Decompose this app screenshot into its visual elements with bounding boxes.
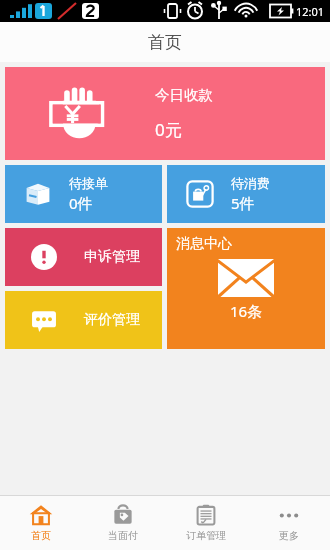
staticText: 待接单	[69, 175, 108, 191]
staticText: 当面付	[108, 529, 138, 542]
staticText: 12:01	[296, 4, 325, 19]
staticText: 申诉管理	[84, 248, 140, 266]
staticText: 0件	[69, 193, 93, 213]
staticText: 5件	[231, 193, 255, 213]
button[interactable]: 申诉管理	[5, 228, 162, 286]
button[interactable]: 评价管理	[5, 291, 162, 349]
button[interactable]: 待接单	[5, 165, 162, 223]
staticText: 订单管理	[186, 529, 226, 542]
staticText: 首页	[31, 529, 51, 542]
button[interactable]: 今日收款	[5, 67, 325, 160]
staticText: 消息中心	[176, 235, 232, 253]
button[interactable]: 消息中心	[167, 228, 325, 349]
button[interactable]: 当面付	[82, 496, 164, 550]
staticText: 更多	[279, 529, 299, 542]
staticText: 评价管理	[84, 311, 140, 329]
staticText: 0元	[155, 118, 182, 141]
button[interactable]: 首页	[0, 496, 82, 550]
staticText: 今日收款	[155, 86, 213, 104]
staticText: 待消费	[231, 175, 270, 191]
staticText: 16条	[230, 301, 263, 321]
button[interactable]: 待消费	[167, 165, 325, 223]
staticText: 首页	[148, 32, 182, 53]
button[interactable]: 更多	[247, 496, 330, 550]
button[interactable]: 订单管理	[164, 496, 247, 550]
